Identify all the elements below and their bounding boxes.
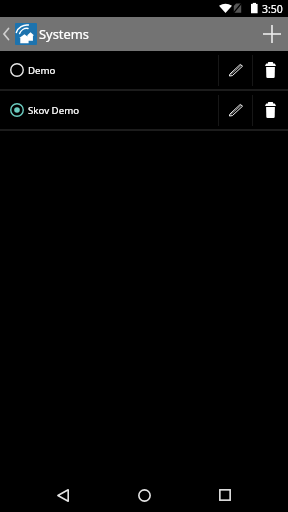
button[interactable]: Edit [219, 91, 252, 129]
button[interactable]: Back [0, 17, 14, 51]
button[interactable]: Home [122, 473, 166, 512]
staticText: Demo [28, 64, 56, 77]
staticText: Systems [39, 25, 89, 43]
button[interactable]: Delete [253, 91, 288, 129]
button[interactable]: Recents [203, 473, 247, 512]
button[interactable]: Delete [253, 51, 288, 89]
staticText: 3:50 [262, 2, 283, 16]
button[interactable]: Skov Demo [0, 91, 288, 129]
button[interactable]: Back [41, 473, 85, 512]
button[interactable]: Demo [0, 51, 288, 89]
staticText: Skov Demo [28, 104, 80, 117]
button[interactable]: Add [255, 17, 288, 51]
button[interactable]: Edit [219, 51, 252, 89]
